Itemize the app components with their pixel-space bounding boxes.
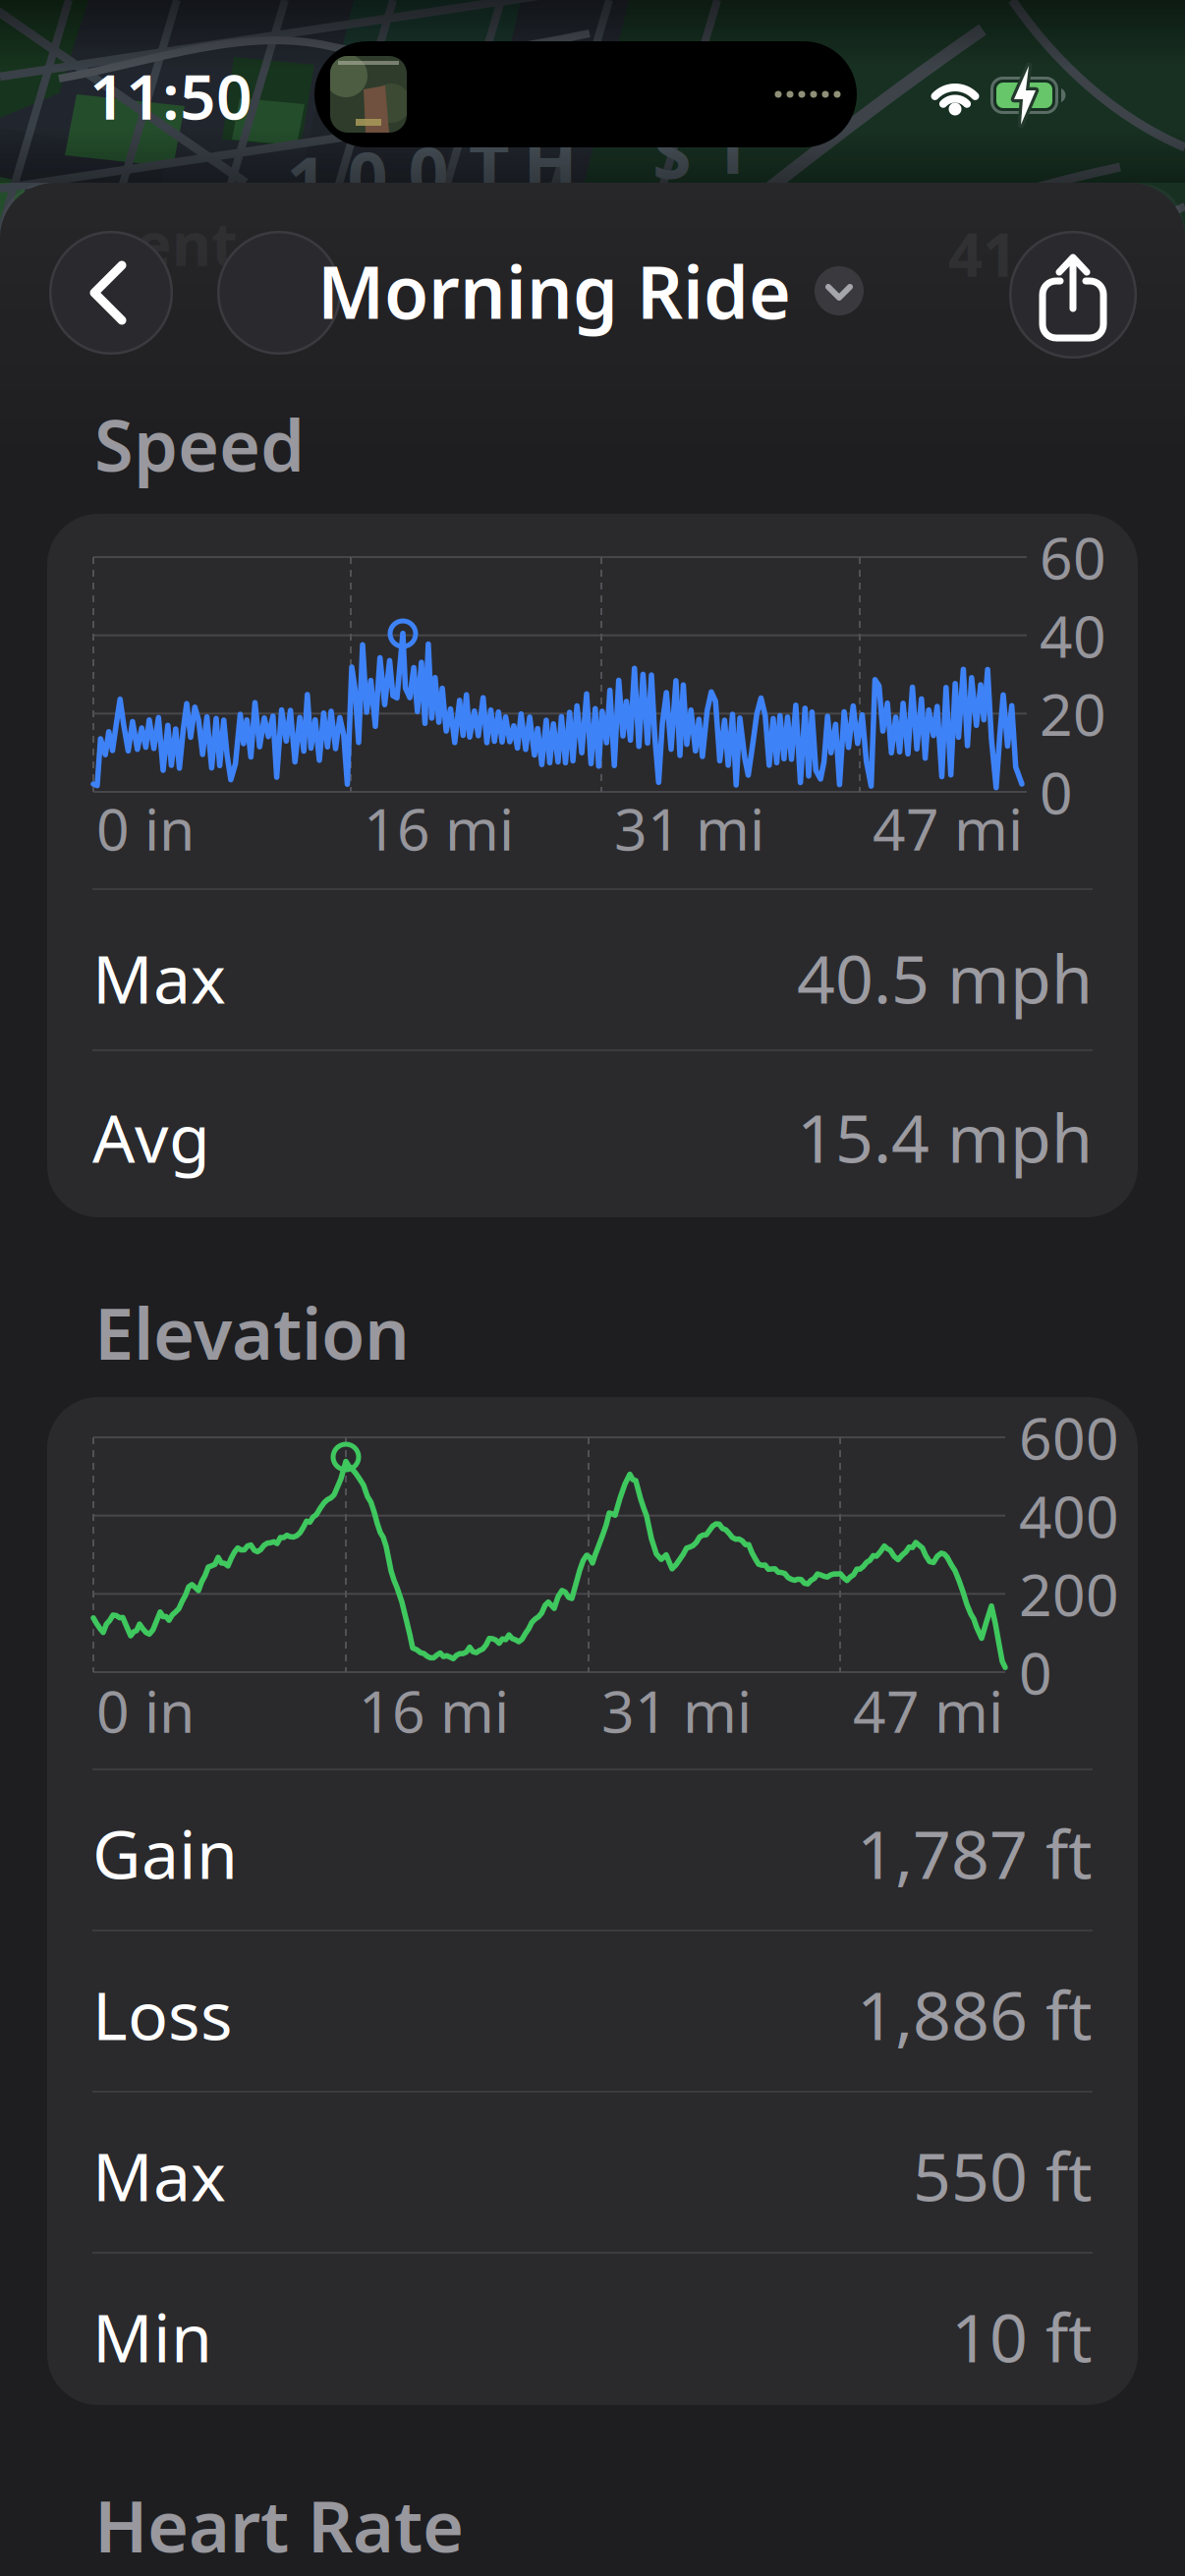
button[interactable]: Morning Ride — [317, 243, 864, 339]
button[interactable]: Map — [217, 231, 341, 355]
staticText: Max — [92, 2131, 226, 2219]
staticText: 60 — [1040, 519, 1106, 595]
staticText: 0 — [408, 124, 449, 218]
staticText: 41 — [948, 213, 1017, 293]
staticText: Gain — [92, 1809, 238, 1897]
staticText: 600 — [1019, 1399, 1119, 1476]
staticText: 31 mi — [601, 1672, 752, 1749]
staticText — [602, 109, 621, 203]
staticText: Avg — [92, 1092, 210, 1181]
staticText: Min — [92, 2292, 212, 2381]
staticText: 10 ft — [951, 2292, 1093, 2381]
staticText: 0 in — [96, 1672, 195, 1749]
staticText: ent — [136, 203, 238, 283]
staticText: 40 — [1040, 597, 1106, 674]
staticText: 40.5 mph — [797, 933, 1093, 1022]
staticText: 16 mi — [359, 1672, 509, 1749]
staticText: T — [712, 99, 754, 193]
staticText: Heart Rate — [94, 2478, 464, 2572]
staticText: 0 — [347, 129, 388, 223]
staticText: 0 — [1019, 1634, 1052, 1710]
staticText: Elevation — [94, 1285, 410, 1379]
button[interactable]: Back — [49, 231, 173, 355]
staticText: 47 mi — [853, 1672, 1003, 1749]
staticText: 200 — [1019, 1556, 1119, 1632]
staticText: H — [523, 114, 577, 208]
staticText: 11:50 — [89, 54, 253, 137]
staticText: Morning Ride — [317, 243, 791, 339]
staticText: 16 mi — [364, 790, 514, 866]
staticText: 0 in — [96, 790, 195, 866]
staticText: 47 mi — [873, 790, 1023, 866]
button[interactable]: Share — [1009, 231, 1137, 359]
staticText: 1,886 ft — [857, 1970, 1093, 2058]
staticText: 15.4 mph — [797, 1092, 1093, 1181]
staticText: Loss — [92, 1970, 233, 2058]
staticText: 20 — [1040, 675, 1106, 752]
staticText: 31 mi — [614, 790, 764, 866]
staticText: 550 ft — [913, 2131, 1093, 2219]
staticText: 400 — [1019, 1477, 1119, 1554]
staticText: T — [469, 119, 510, 213]
staticText: Speed — [94, 397, 305, 491]
staticText: 0 — [1040, 754, 1073, 830]
staticText: S — [652, 104, 692, 198]
staticText: Max — [92, 933, 226, 1022]
staticText: 1 — [286, 134, 327, 228]
staticText: 1,787 ft — [857, 1809, 1093, 1897]
